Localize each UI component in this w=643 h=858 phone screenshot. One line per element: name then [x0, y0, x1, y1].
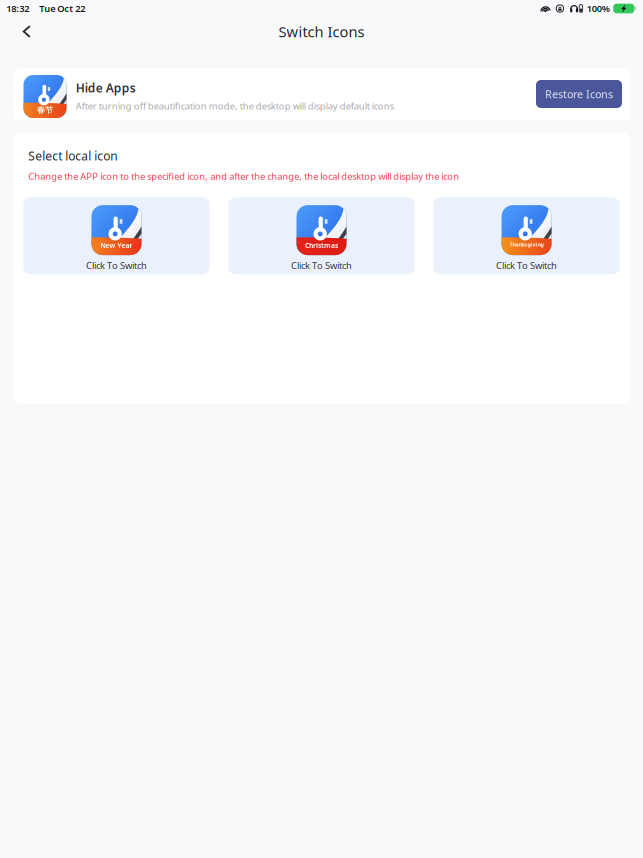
staticText: Switch Icons [278, 22, 364, 41]
staticText: Click To Switch [86, 259, 147, 271]
button[interactable]: Restore Icons [536, 80, 622, 108]
staticText: 100% [587, 2, 610, 15]
staticText: 春节 [37, 105, 53, 115]
staticText: Hide Apps [76, 80, 136, 96]
staticText: After turning off beautification mode, t… [76, 100, 394, 112]
staticText: 18:32 [6, 2, 29, 15]
staticText: Restore Icons [545, 87, 613, 101]
staticText: Thanksgiving [509, 241, 543, 248]
staticText: New Year [100, 241, 132, 250]
staticText: Click To Switch [496, 259, 557, 271]
button[interactable]: Christmas [228, 197, 414, 274]
button[interactable]: New Year [23, 197, 209, 274]
staticText: Change the APP icon to the specified ico… [28, 170, 459, 182]
button[interactable]: Back [16, 19, 38, 44]
staticText: Christmas [305, 241, 338, 250]
staticText: Select local icon [28, 148, 117, 164]
button[interactable]: Thanksgiving [433, 197, 620, 274]
staticText: Click To Switch [291, 259, 352, 271]
staticText: Tue Oct 22 [39, 2, 85, 15]
